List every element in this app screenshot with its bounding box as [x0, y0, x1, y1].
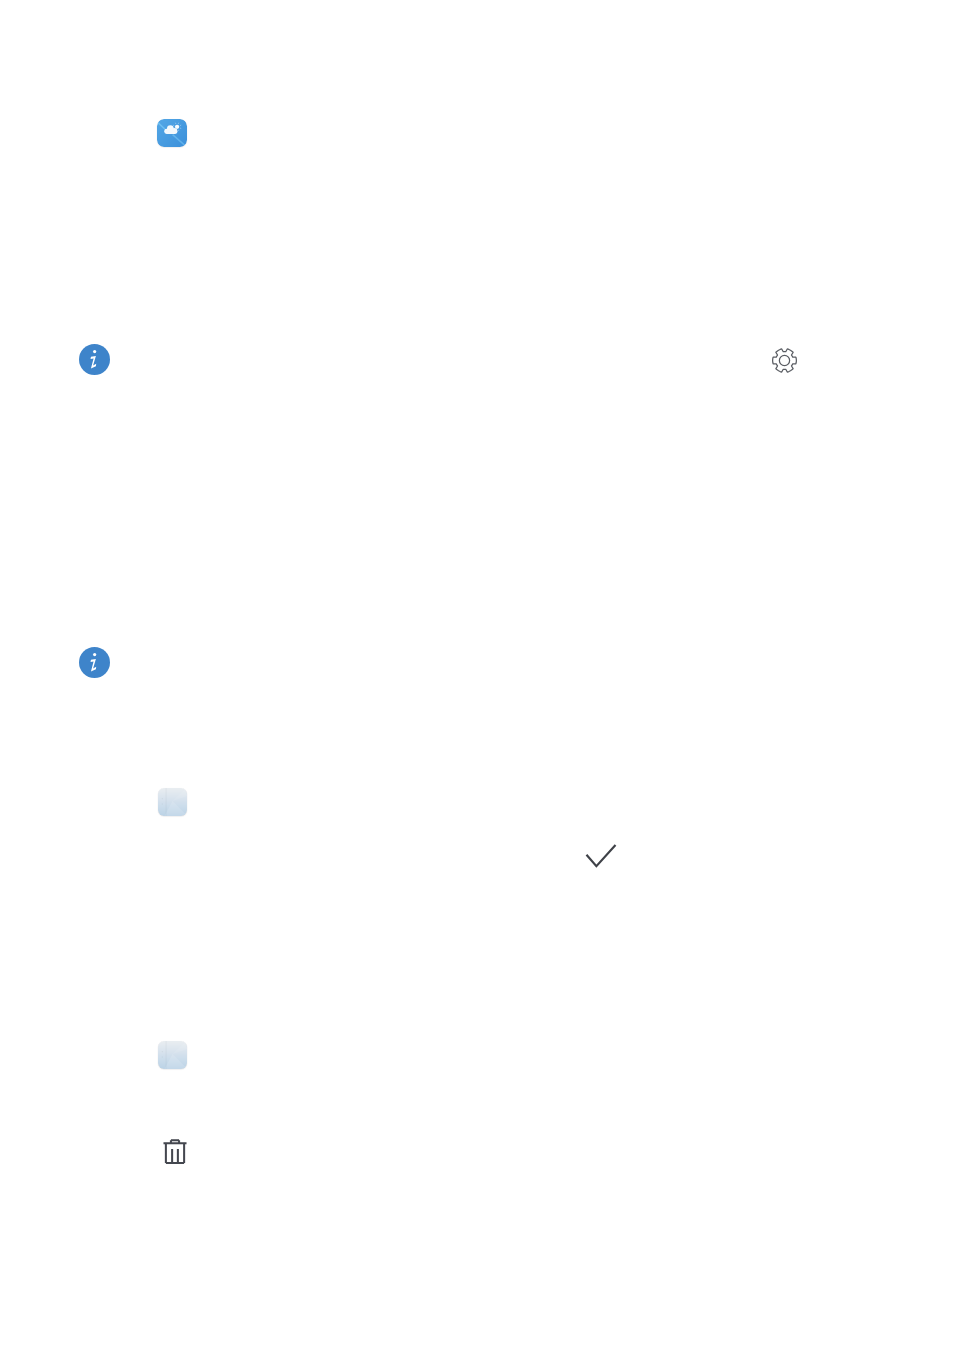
button[interactable]: Information — [79, 344, 110, 375]
button[interactable]: Weather app — [0, 119, 954, 147]
button[interactable]: App entry — [0, 1041, 954, 1069]
button[interactable]: Selected — [584, 841, 617, 869]
button[interactable]: Delete — [163, 1139, 187, 1164]
button[interactable]: App entry — [0, 788, 954, 816]
button[interactable]: Settings — [772, 348, 797, 373]
button[interactable]: Information — [79, 647, 110, 678]
